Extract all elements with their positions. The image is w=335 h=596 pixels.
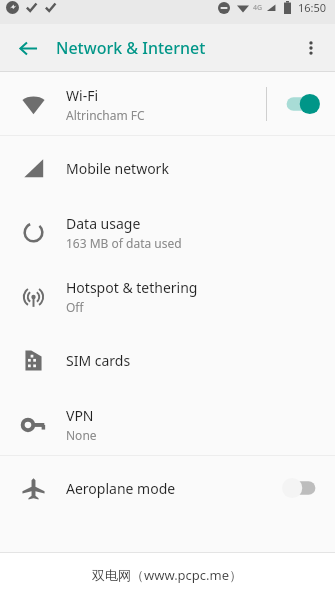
button[interactable]: Mobile network: [0, 136, 335, 200]
staticText: Aeroplane mode: [66, 479, 176, 498]
staticText: 4G: [253, 3, 263, 13]
button[interactable]: VPN: [0, 392, 335, 456]
staticText: 双电网（www.pcpc.me）: [92, 566, 243, 584]
staticText: 16:50: [298, 0, 327, 15]
button[interactable]: SIM cards: [0, 328, 335, 392]
button[interactable]: Aeroplane mode: [0, 456, 335, 520]
button[interactable]: Wi-Fi toggle: [267, 80, 335, 128]
button[interactable]: Aeroplane mode toggle: [267, 464, 335, 512]
button[interactable]: Wi-Fi: [0, 72, 335, 136]
staticText: Hotspot & tethering: [66, 278, 198, 297]
staticText: Wi-Fi: [66, 86, 99, 105]
staticText: Mobile network: [66, 159, 169, 178]
staticText: 163 MB of data used: [66, 235, 182, 251]
button[interactable]: Data usage: [0, 200, 335, 264]
staticText: Network & Internet: [56, 37, 206, 59]
staticText: None: [66, 427, 97, 443]
staticText: Data usage: [66, 214, 141, 233]
button[interactable]: Hotspot & tethering: [0, 264, 335, 328]
staticText: SIM cards: [66, 351, 131, 370]
staticText: Altrincham FC: [66, 107, 145, 123]
button[interactable]: Back: [10, 30, 46, 66]
staticText: VPN: [66, 406, 94, 425]
staticText: Off: [66, 299, 84, 315]
button[interactable]: More options: [293, 30, 329, 66]
